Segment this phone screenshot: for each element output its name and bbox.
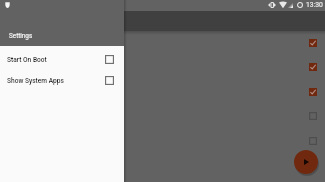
button[interactable]: Run xyxy=(294,150,318,174)
button[interactable]: Show System Apps xyxy=(0,70,124,91)
staticText: 13:30 xyxy=(306,1,323,9)
staticText: Show System Apps xyxy=(7,77,64,85)
button[interactable]: Toggle app 4 xyxy=(309,112,317,120)
button[interactable]: Toggle app 5 xyxy=(309,137,317,145)
button[interactable]: Toggle app 3 xyxy=(309,88,317,96)
button[interactable]: Toggle app 2 xyxy=(309,63,317,71)
staticText: Settings xyxy=(9,32,33,39)
button[interactable]: Start On Boot xyxy=(0,49,124,70)
button[interactable]: Toggle app 1 xyxy=(309,39,317,47)
staticText: Start On Boot xyxy=(7,56,47,64)
